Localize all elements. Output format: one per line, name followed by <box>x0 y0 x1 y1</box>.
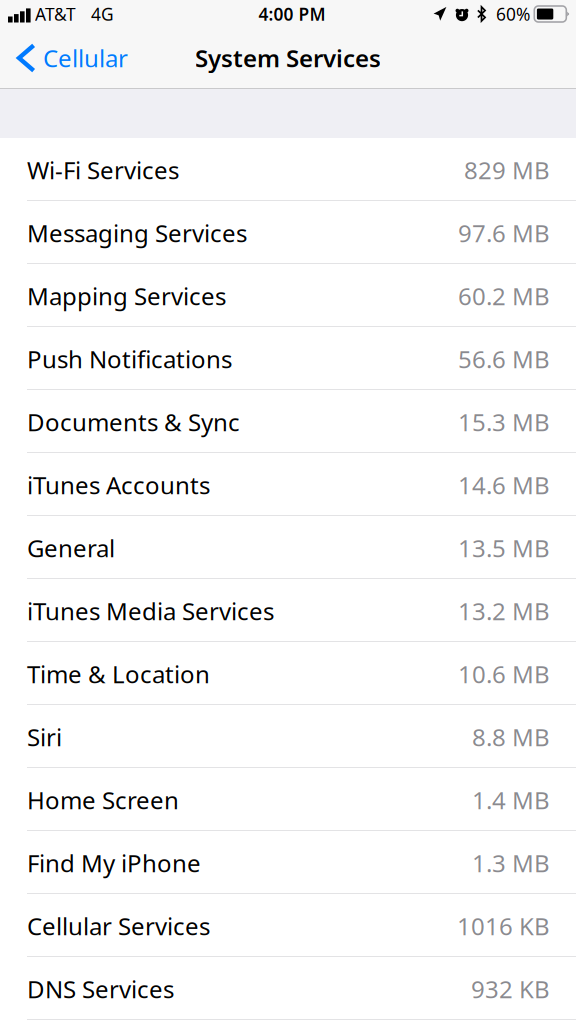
staticText: DNS Services <box>27 973 174 1005</box>
button[interactable]: iTunes Media Services <box>0 579 576 642</box>
button[interactable]: Siri <box>0 705 576 768</box>
staticText: AT&T <box>35 2 76 25</box>
staticText: 15.3 MB <box>458 406 550 438</box>
button[interactable]: General <box>0 516 576 579</box>
staticText: 8.8 MB <box>472 721 550 753</box>
staticText: Time & Location <box>27 658 210 690</box>
staticText: Siri <box>27 721 62 753</box>
staticText: 1.3 MB <box>472 847 550 879</box>
staticText: 56.6 MB <box>458 343 550 375</box>
button[interactable]: Cellular Services <box>0 894 576 957</box>
staticText: 97.6 MB <box>458 217 550 249</box>
staticText: Find My iPhone <box>27 847 201 879</box>
staticText: 1016 KB <box>457 910 550 942</box>
button[interactable]: Wi-Fi Services <box>0 138 576 201</box>
staticText: System Services <box>195 42 381 74</box>
button[interactable]: Home Screen <box>0 768 576 831</box>
staticText: 4G <box>91 2 114 25</box>
staticText: 829 MB <box>464 154 550 186</box>
staticText: 14.6 MB <box>458 469 550 501</box>
button[interactable]: Documents & Sync <box>0 390 576 453</box>
staticText: iTunes Media Services <box>27 595 274 627</box>
button[interactable]: Cellular <box>0 36 138 80</box>
staticText: 1.4 MB <box>472 784 550 816</box>
staticText: Home Screen <box>27 784 179 816</box>
staticText: Wi-Fi Services <box>27 154 179 186</box>
staticText: 4:00 PM <box>258 2 325 25</box>
staticText: 60% <box>496 2 530 25</box>
staticText: General <box>27 532 115 564</box>
button[interactable]: Push Notifications <box>0 327 576 390</box>
staticText: 13.5 MB <box>458 532 550 564</box>
button[interactable]: Messaging Services <box>0 201 576 264</box>
staticText: Push Notifications <box>27 343 232 375</box>
button[interactable]: DNS Services <box>0 957 576 1020</box>
button[interactable]: Mapping Services <box>0 264 576 327</box>
staticText: iTunes Accounts <box>27 469 210 501</box>
button[interactable]: Find My iPhone <box>0 831 576 894</box>
staticText: Cellular Services <box>27 910 210 942</box>
staticText: Documents & Sync <box>27 406 240 438</box>
staticText: 10.6 MB <box>458 658 550 690</box>
staticText: 932 KB <box>471 973 550 1005</box>
staticText: Cellular <box>43 42 128 74</box>
staticText: 60.2 MB <box>458 280 550 312</box>
button[interactable]: iTunes Accounts <box>0 453 576 516</box>
staticText: Mapping Services <box>27 280 226 312</box>
button[interactable]: Time & Location <box>0 642 576 705</box>
staticText: Messaging Services <box>27 217 247 249</box>
staticText: 13.2 MB <box>458 595 550 627</box>
